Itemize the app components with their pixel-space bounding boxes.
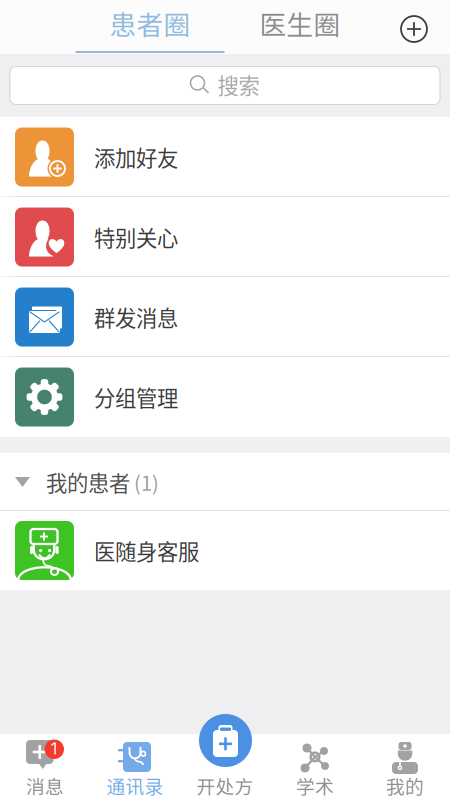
button[interactable]: 学术 [270,734,360,800]
staticText: 1 [51,739,58,758]
staticText: (1) [130,467,159,496]
staticText: 搜索 [217,69,259,100]
staticText: 消息 [26,772,64,799]
staticText: 学术 [296,772,334,799]
staticText: 我的患者 [46,467,130,497]
staticText: 开处方 [196,772,253,799]
staticText: 群发消息 [94,302,178,332]
button[interactable]: 群发消息 [0,277,450,357]
staticText: 通讯录 [106,772,163,799]
button[interactable]: 分组管理 [0,357,450,437]
button[interactable]: 我的患者 [0,453,450,511]
button[interactable]: 我的 [360,734,450,800]
staticText: 添加好友 [94,142,178,172]
button[interactable]: 新建 [375,0,450,54]
staticText: 医随身客服 [94,535,199,566]
button[interactable]: 医生圈 [225,0,375,54]
staticText: 患者圈 [109,4,190,42]
button[interactable]: 1 [0,734,90,800]
staticText: 特别关心 [94,222,178,252]
staticText: 分组管理 [94,382,178,412]
button[interactable]: 开处方 [180,734,270,800]
button[interactable]: 添加好友 [0,117,450,197]
button[interactable]: 医随身客服 [0,511,450,590]
staticText: 医生圈 [259,4,340,42]
button[interactable]: 通讯录 [90,734,180,800]
button[interactable]: 特别关心 [0,197,450,277]
staticText: 我的 [386,772,424,799]
button[interactable]: 搜索 [0,66,450,104]
button[interactable]: 患者圈 [75,0,225,54]
button[interactable]: 开处方 [199,714,252,767]
